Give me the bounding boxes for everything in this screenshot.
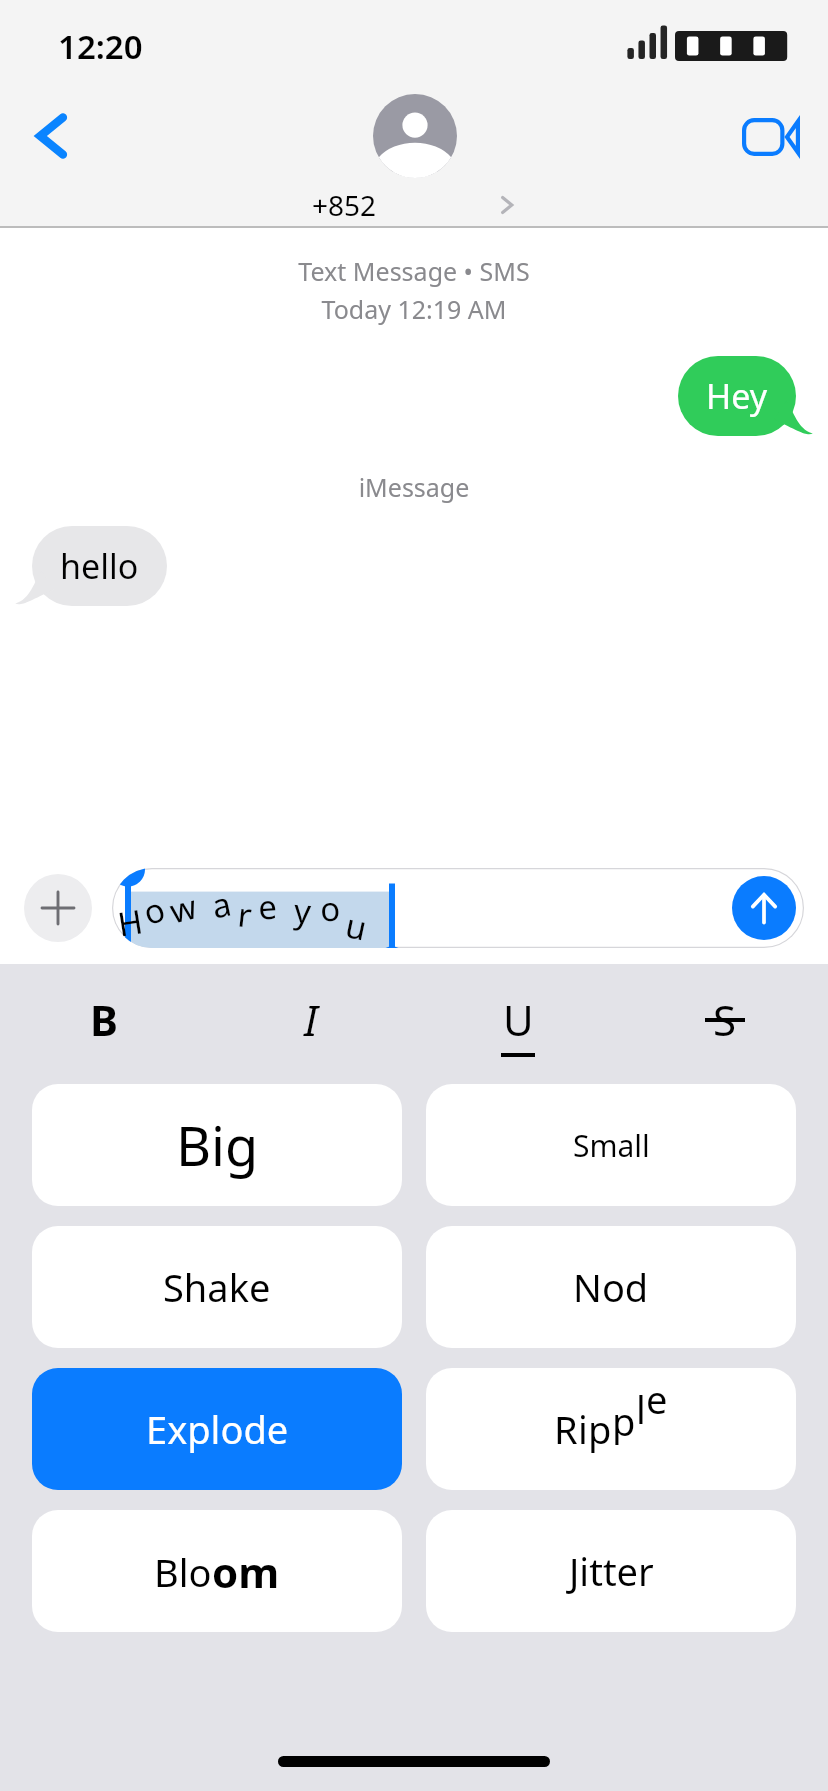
button[interactable]: hello xyxy=(32,526,167,606)
staticText: Jitter xyxy=(569,1545,654,1597)
button[interactable]: Add attachment xyxy=(24,874,92,942)
staticText: Blo xyxy=(154,1546,212,1598)
button[interactable]: Shake xyxy=(32,1226,402,1348)
button[interactable]: H xyxy=(112,868,804,948)
staticText: p xyxy=(612,1395,636,1447)
button[interactable]: Blo xyxy=(32,1510,402,1632)
staticText: I xyxy=(304,991,318,1048)
staticText: p xyxy=(588,1403,612,1455)
staticText: i xyxy=(578,1403,588,1455)
button[interactable]: R xyxy=(426,1368,796,1490)
button[interactable]: S xyxy=(621,964,828,1074)
button[interactable]: +852 xyxy=(312,94,517,224)
button[interactable]: FaceTime video call xyxy=(732,98,810,176)
staticText: R xyxy=(554,1403,578,1455)
staticText: Hey xyxy=(706,373,768,419)
staticText: Text Message • SMS xyxy=(0,254,828,288)
staticText: H xyxy=(115,898,146,947)
staticText: e xyxy=(256,883,279,930)
button[interactable]: Jitter xyxy=(426,1510,796,1632)
staticText: iMessage xyxy=(0,470,828,504)
button[interactable]: Hey xyxy=(678,356,796,436)
staticText: y xyxy=(292,887,313,934)
button[interactable]: U xyxy=(414,964,621,1074)
staticText: hello xyxy=(60,543,139,589)
staticText: o xyxy=(319,885,341,931)
staticText: om xyxy=(212,1543,280,1600)
button[interactable]: Small xyxy=(426,1084,796,1206)
staticText: u xyxy=(342,902,371,948)
staticText: Explode xyxy=(146,1403,289,1455)
staticText: +852 xyxy=(312,186,377,224)
staticText: l xyxy=(636,1383,646,1435)
button[interactable]: Back xyxy=(14,98,90,174)
staticText: U xyxy=(503,991,534,1048)
staticText: Big xyxy=(176,1108,259,1182)
staticText: o xyxy=(137,886,170,935)
staticText: B xyxy=(90,991,118,1048)
button[interactable]: I xyxy=(207,964,414,1074)
button[interactable]: B xyxy=(0,964,207,1074)
button[interactable]: Big xyxy=(32,1084,402,1206)
button[interactable]: Send xyxy=(732,876,796,940)
staticText: Small xyxy=(573,1125,650,1166)
staticText: r xyxy=(236,891,254,938)
staticText: w xyxy=(165,883,201,933)
staticText: 12:20 xyxy=(58,24,143,69)
staticText: Shake xyxy=(163,1261,271,1313)
button[interactable]: Nod xyxy=(426,1226,796,1348)
staticText: e xyxy=(646,1373,668,1425)
button[interactable]: Explode xyxy=(32,1368,402,1490)
staticText: Nod xyxy=(573,1261,649,1313)
staticText: Today 12:19 AM xyxy=(0,292,828,326)
staticText: a xyxy=(207,880,235,928)
staticText: S xyxy=(713,991,737,1048)
